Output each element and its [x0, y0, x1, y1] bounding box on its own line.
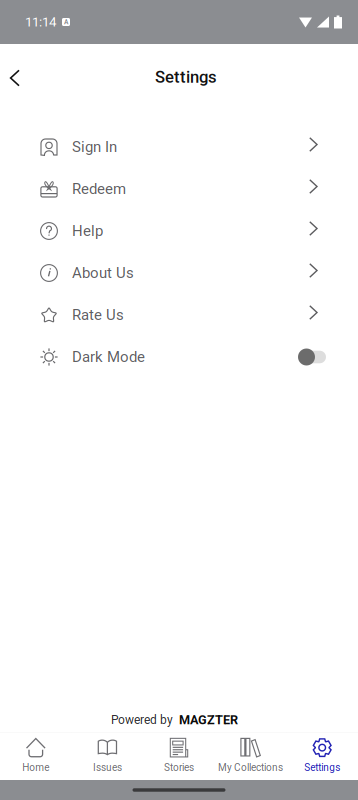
button[interactable]: Issues [72, 732, 143, 780]
button[interactable]: About Us [0, 252, 358, 294]
staticText: Dark Mode [72, 348, 145, 366]
staticText: My Collections [218, 762, 283, 773]
staticText: Settings [304, 762, 340, 773]
button[interactable]: My Collections [215, 732, 286, 780]
button[interactable]: Help [0, 210, 358, 252]
button[interactable]: Back [0, 55, 30, 99]
button[interactable]: Home [0, 732, 72, 780]
staticText: Powered by [111, 713, 173, 727]
staticText: 11:14 [25, 14, 56, 30]
staticText: Rate Us [72, 306, 124, 324]
button[interactable]: Dark Mode [0, 336, 358, 378]
staticText: About Us [72, 264, 134, 282]
staticText: A [64, 18, 68, 26]
button[interactable]: Sign In [0, 126, 358, 168]
button[interactable]: Redeem [0, 168, 358, 210]
button[interactable]: Stories [143, 732, 215, 780]
button[interactable]: Settings [286, 732, 358, 780]
staticText: Settings [155, 67, 217, 87]
staticText: Issues [93, 762, 122, 773]
staticText: Home [22, 762, 49, 773]
staticText: Sign In [72, 138, 117, 156]
button[interactable]: Rate Us [0, 294, 358, 336]
staticText: Help [72, 222, 103, 240]
staticText: Redeem [72, 180, 126, 198]
staticText: Stories [164, 762, 194, 773]
staticText: MAGZTER [179, 713, 238, 727]
